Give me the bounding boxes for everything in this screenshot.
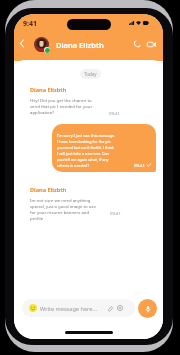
staticText: 09:41	[110, 210, 121, 216]
button[interactable]: Diana Elizbth	[56, 40, 104, 50]
staticText: 09:41	[109, 110, 120, 116]
button[interactable]: Today	[80, 69, 101, 79]
button[interactable]: Diana Elizbth	[30, 86, 120, 115]
staticText: 09:41	[134, 162, 145, 168]
staticText: Im not sure we need anything special, ju…	[30, 197, 96, 221]
button[interactable]: Take photo	[115, 303, 125, 313]
staticText: I'm sorry I just saw this message. I hav…	[57, 133, 116, 168]
staticText: Diana Elizbth	[30, 86, 67, 94]
button[interactable]: Voice call	[131, 38, 142, 49]
button[interactable]: I'm sorry I just saw this message. I hav…	[52, 124, 156, 172]
staticText: Hey! Did you get the chance to send that…	[30, 97, 96, 115]
button[interactable]: Video call	[145, 38, 157, 50]
button[interactable]: Record voice message	[138, 299, 157, 318]
staticText: Diana Elizbth	[30, 186, 67, 194]
button[interactable]: Diana Elizbth	[30, 186, 120, 221]
staticText: Today	[84, 71, 97, 77]
staticText: 9:41	[23, 19, 37, 29]
button[interactable]: Attach file	[105, 303, 115, 313]
button[interactable]: Back	[15, 37, 28, 50]
staticText: Write message here...	[40, 305, 97, 313]
button[interactable]: Write message here...	[22, 299, 135, 317]
